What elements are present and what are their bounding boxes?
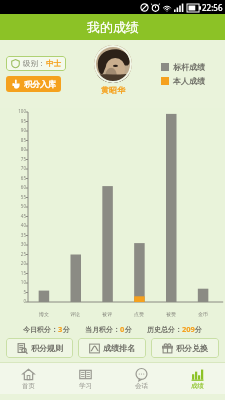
staticText: 点赞 (134, 311, 144, 317)
button[interactable]: 积分入库 (6, 76, 61, 92)
staticText: 55 (20, 194, 26, 200)
staticText: 积分规则 (31, 343, 63, 353)
staticText: 分 (125, 325, 132, 334)
staticText: 会话 (135, 382, 148, 390)
staticText: 90 (20, 127, 26, 133)
staticText: 209 (182, 324, 195, 334)
staticText: 当月积分： (85, 325, 120, 334)
staticText: 65 (20, 175, 26, 181)
staticText: 45 (20, 213, 26, 219)
staticText: 分 (195, 325, 202, 334)
staticText: 被评 (102, 311, 112, 317)
staticText: 85 (20, 137, 26, 143)
staticText: 3 (58, 324, 63, 334)
staticText: 40 (20, 222, 26, 228)
staticText: 5 (23, 289, 26, 295)
staticText: 60 (20, 184, 26, 190)
staticText: 70 (20, 165, 26, 171)
button[interactable]: 积分规则 (6, 338, 73, 358)
staticText: 我的成绩 (87, 19, 139, 35)
staticText: 标杆成绩 (173, 62, 205, 72)
staticText: 80 (20, 146, 26, 152)
staticText: 成绩排名 (103, 343, 135, 353)
staticText: 20 (20, 260, 26, 266)
staticText: 被赞 (166, 311, 176, 317)
button[interactable]: Profile photo (94, 45, 132, 83)
staticText: 级别： (23, 59, 46, 68)
staticText: 22:56 (202, 2, 223, 13)
staticText: 历史总分： (147, 325, 182, 334)
staticText: 35 (20, 232, 26, 238)
button[interactable]: 级别： (6, 56, 66, 71)
staticText: 95 (20, 118, 26, 124)
button[interactable]: 学习 (57, 363, 113, 394)
staticText: 首页 (22, 382, 35, 390)
staticText: 学习 (79, 382, 92, 390)
staticText: 黄昭华 (101, 85, 125, 95)
button[interactable]: 会话 (113, 363, 169, 394)
button[interactable]: 首页 (0, 363, 57, 394)
staticText: 积分兑换 (176, 343, 208, 353)
staticText: 25 (20, 251, 26, 257)
staticText: 积分入库 (24, 79, 56, 89)
staticText: 75 (20, 156, 26, 162)
staticText: 博文 (39, 311, 49, 317)
button[interactable]: 成绩 (169, 363, 225, 394)
staticText: 成绩 (191, 382, 204, 390)
staticText: 分 (63, 325, 70, 334)
staticText: 中士 (46, 59, 61, 68)
staticText: 0 (120, 324, 125, 334)
staticText: 0 (23, 298, 26, 304)
staticText: 金币 (198, 311, 208, 317)
staticText: 100 (18, 108, 26, 114)
staticText: 本人成绩 (173, 76, 205, 86)
staticText: 30 (20, 241, 26, 247)
button[interactable]: 积分兑换 (151, 338, 219, 358)
staticText: 评论 (70, 311, 80, 317)
staticText: 10 (20, 279, 26, 285)
button[interactable]: 成绩排名 (78, 338, 146, 358)
staticText: 15 (20, 270, 26, 276)
staticText: 今日积分： (23, 325, 58, 334)
staticText: 50 (20, 203, 26, 209)
